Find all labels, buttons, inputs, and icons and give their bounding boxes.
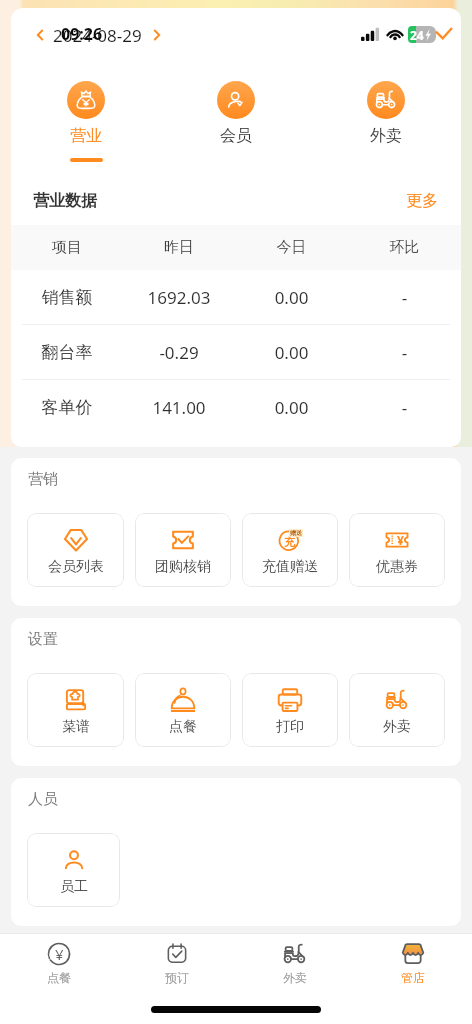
staticText: 赠送 (290, 529, 302, 537)
staticText: 管店 (401, 970, 425, 985)
button[interactable]: 打印 (242, 673, 338, 747)
staticText: 翻台率 (11, 342, 123, 363)
button[interactable]: 营业 (11, 74, 161, 162)
button[interactable]: Next day (148, 26, 166, 44)
staticText: 客单价 (11, 397, 123, 418)
button[interactable]: 员工 (27, 833, 120, 907)
staticText: 充 (284, 535, 295, 549)
staticText: 外卖 (283, 970, 307, 985)
staticText: 09:26 (61, 23, 103, 45)
button[interactable]: 会员 (161, 74, 311, 146)
staticText: 团购核销 (155, 558, 211, 576)
staticText: ¥ (397, 532, 404, 548)
staticText: - (348, 286, 461, 309)
staticText: 环比 (348, 238, 461, 257)
staticText: 预订 (165, 970, 189, 985)
staticText: 打印 (276, 718, 304, 736)
staticText: 外卖 (370, 126, 402, 146)
staticText: ¥ (55, 944, 64, 964)
staticText: 更多 (406, 191, 438, 211)
button[interactable]: 点餐 (135, 673, 231, 747)
button[interactable]: 管店 (354, 934, 472, 985)
staticText: 营业 (70, 126, 102, 146)
staticText: 0.00 (235, 396, 348, 419)
button[interactable]: Previous day (31, 26, 49, 44)
button[interactable]: ¥ (349, 513, 445, 587)
staticText: 今日 (235, 238, 348, 257)
staticText: - (348, 396, 461, 419)
staticText: 2024-08-29 (53, 24, 142, 47)
button[interactable]: 菜谱 (27, 673, 124, 747)
staticText: 项目 (11, 238, 123, 257)
staticText: 营业数据 (33, 191, 97, 211)
staticText: 0.00 (235, 341, 348, 364)
staticText: 24 (410, 27, 424, 43)
staticText: 点餐 (47, 970, 71, 985)
staticText: 会员列表 (48, 558, 104, 576)
button[interactable]: 外卖 (311, 74, 461, 146)
staticText: 会员 (220, 126, 252, 146)
button[interactable]: 预订 (118, 934, 236, 985)
staticText: 销售额 (11, 287, 123, 308)
button[interactable]: 外卖 (236, 934, 354, 985)
button[interactable]: 外卖 (349, 673, 445, 747)
staticText: 141.00 (123, 396, 235, 419)
button[interactable]: ¥ (0, 934, 118, 985)
staticText: -0.29 (123, 341, 235, 364)
staticText: 外卖 (383, 718, 411, 736)
button[interactable]: 更多 (406, 191, 438, 211)
staticText: 昨日 (123, 238, 235, 257)
staticText: 设置 (28, 630, 58, 649)
staticText: 点餐 (169, 718, 197, 736)
button[interactable]: 会员列表 (27, 513, 124, 587)
staticText: 0.00 (235, 286, 348, 309)
staticText: - (348, 341, 461, 364)
staticText: 员工 (60, 878, 88, 896)
button[interactable]: 团购核销 (135, 513, 231, 587)
staticText: 人员 (28, 790, 58, 809)
staticText: 充值赠送 (262, 558, 318, 576)
staticText: 优惠券 (376, 558, 418, 576)
staticText: 营销 (28, 470, 58, 489)
staticText: 菜谱 (62, 718, 90, 736)
button[interactable]: 充 (242, 513, 338, 587)
staticText: 1692.03 (123, 286, 235, 309)
